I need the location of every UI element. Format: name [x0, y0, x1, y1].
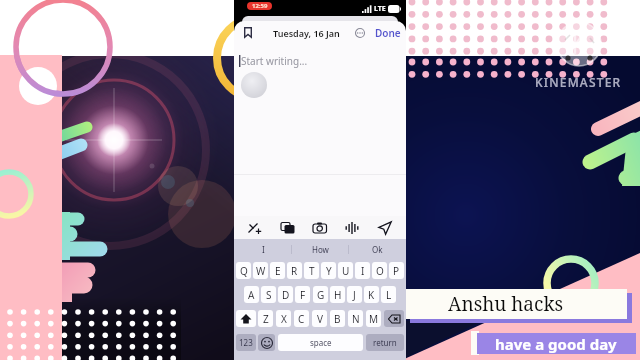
- button[interactable]: N: [348, 310, 363, 327]
- button[interactable]: A: [244, 286, 259, 303]
- staticText: return: [373, 337, 397, 348]
- button[interactable]: Bookmark: [240, 25, 255, 40]
- staticText: T: [309, 264, 315, 278]
- staticText: W: [256, 264, 266, 278]
- staticText: Start writing...: [241, 54, 308, 68]
- button[interactable]: R: [287, 262, 302, 279]
- button[interactable]: O: [372, 262, 387, 279]
- button[interactable]: P: [389, 262, 404, 279]
- button[interactable]: C: [294, 310, 309, 327]
- button[interactable]: V: [312, 310, 327, 327]
- staticText: How: [312, 244, 329, 255]
- staticText: space: [310, 337, 332, 348]
- staticText: K: [368, 288, 375, 302]
- staticText: S: [266, 288, 272, 302]
- button[interactable]: L: [381, 286, 396, 303]
- button[interactable]: D: [278, 286, 293, 303]
- button[interactable]: Send: [374, 217, 396, 239]
- staticText: N: [352, 312, 360, 326]
- button[interactable]: Z: [258, 310, 273, 327]
- staticText: G: [317, 288, 325, 302]
- button[interactable]: Done: [375, 26, 401, 40]
- staticText: E: [275, 264, 281, 278]
- button[interactable]: Backspace: [384, 310, 404, 327]
- staticText: O: [376, 264, 384, 278]
- button[interactable]: E: [270, 262, 285, 279]
- button[interactable]: W: [253, 262, 268, 279]
- staticText: X: [281, 312, 287, 326]
- button[interactable]: space: [278, 334, 363, 351]
- button[interactable]: I: [355, 262, 370, 279]
- staticText: Done: [375, 26, 401, 40]
- button[interactable]: B: [330, 310, 345, 327]
- button[interactable]: M: [366, 310, 381, 327]
- button[interactable]: F: [295, 286, 310, 303]
- button[interactable]: I: [234, 239, 292, 259]
- staticText: D: [282, 288, 290, 302]
- staticText: M: [369, 312, 379, 326]
- staticText: F: [300, 288, 306, 302]
- staticText: Z: [263, 312, 269, 326]
- button[interactable]: Y: [321, 262, 336, 279]
- button[interactable]: Audio: [341, 217, 363, 239]
- button[interactable]: S: [261, 286, 276, 303]
- staticText: Tuesday, 16 Jan: [273, 27, 340, 39]
- button[interactable]: U: [338, 262, 353, 279]
- button[interactable]: X: [276, 310, 291, 327]
- button[interactable]: Markup: [244, 217, 266, 239]
- button[interactable]: More options: [354, 27, 366, 39]
- staticText: Y: [326, 264, 332, 278]
- button[interactable]: J: [347, 286, 362, 303]
- staticText: 12:59: [252, 2, 268, 10]
- button[interactable]: K: [364, 286, 379, 303]
- button[interactable]: Shift: [236, 310, 256, 327]
- staticText: have a good day: [495, 334, 617, 354]
- staticText: A: [248, 288, 255, 302]
- staticText: U: [342, 264, 350, 278]
- staticText: R: [291, 264, 298, 278]
- staticText: Q: [240, 264, 248, 278]
- staticText: Ok: [372, 244, 383, 255]
- staticText: LTE: [374, 4, 386, 14]
- staticText: I: [262, 244, 265, 255]
- button[interactable]: Emoji: [258, 334, 275, 351]
- button[interactable]: Photos: [277, 217, 299, 239]
- staticText: J: [353, 288, 356, 302]
- staticText: KINEMASTER: [535, 74, 622, 90]
- button[interactable]: Q: [236, 262, 251, 279]
- staticText: L: [386, 288, 392, 302]
- button[interactable]: H: [330, 286, 345, 303]
- staticText: H: [334, 288, 342, 302]
- staticText: 123: [239, 337, 253, 348]
- button[interactable]: Camera: [309, 217, 331, 239]
- button[interactable]: T: [304, 262, 319, 279]
- button[interactable]: 123: [236, 334, 256, 351]
- staticText: P: [393, 264, 400, 278]
- button[interactable]: How: [292, 239, 349, 259]
- button[interactable]: G: [313, 286, 328, 303]
- staticText: C: [298, 312, 305, 326]
- staticText: V: [317, 312, 323, 326]
- staticText: I: [361, 264, 365, 278]
- button[interactable]: return: [366, 334, 404, 351]
- staticText: Anshu hacks: [448, 291, 564, 317]
- button[interactable]: Ok: [349, 239, 406, 259]
- staticText: B: [334, 312, 341, 326]
